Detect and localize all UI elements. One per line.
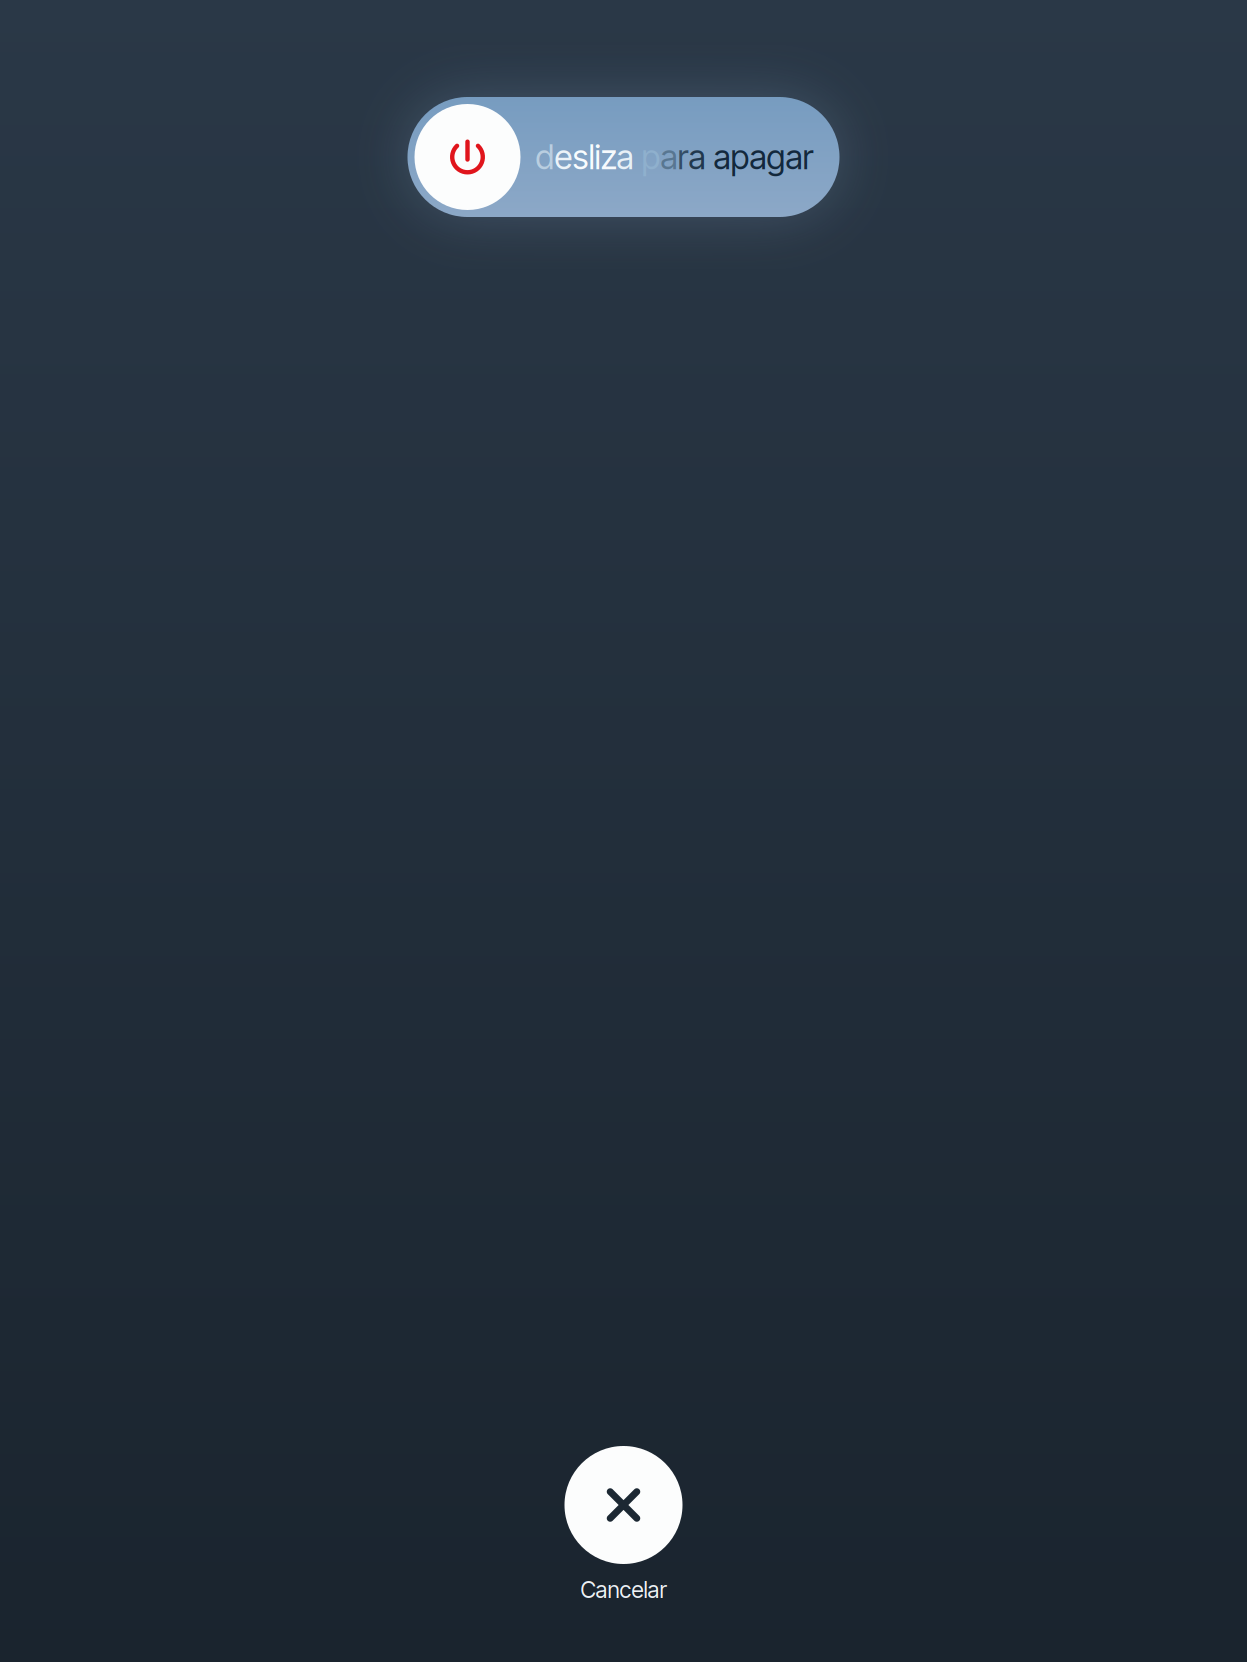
- button[interactable]: desliza para apagar: [407, 97, 839, 217]
- staticText: desliza para apagar: [535, 137, 813, 177]
- button[interactable]: Cancelar: [493, 1446, 753, 1603]
- staticText: Cancelar: [580, 1576, 666, 1603]
